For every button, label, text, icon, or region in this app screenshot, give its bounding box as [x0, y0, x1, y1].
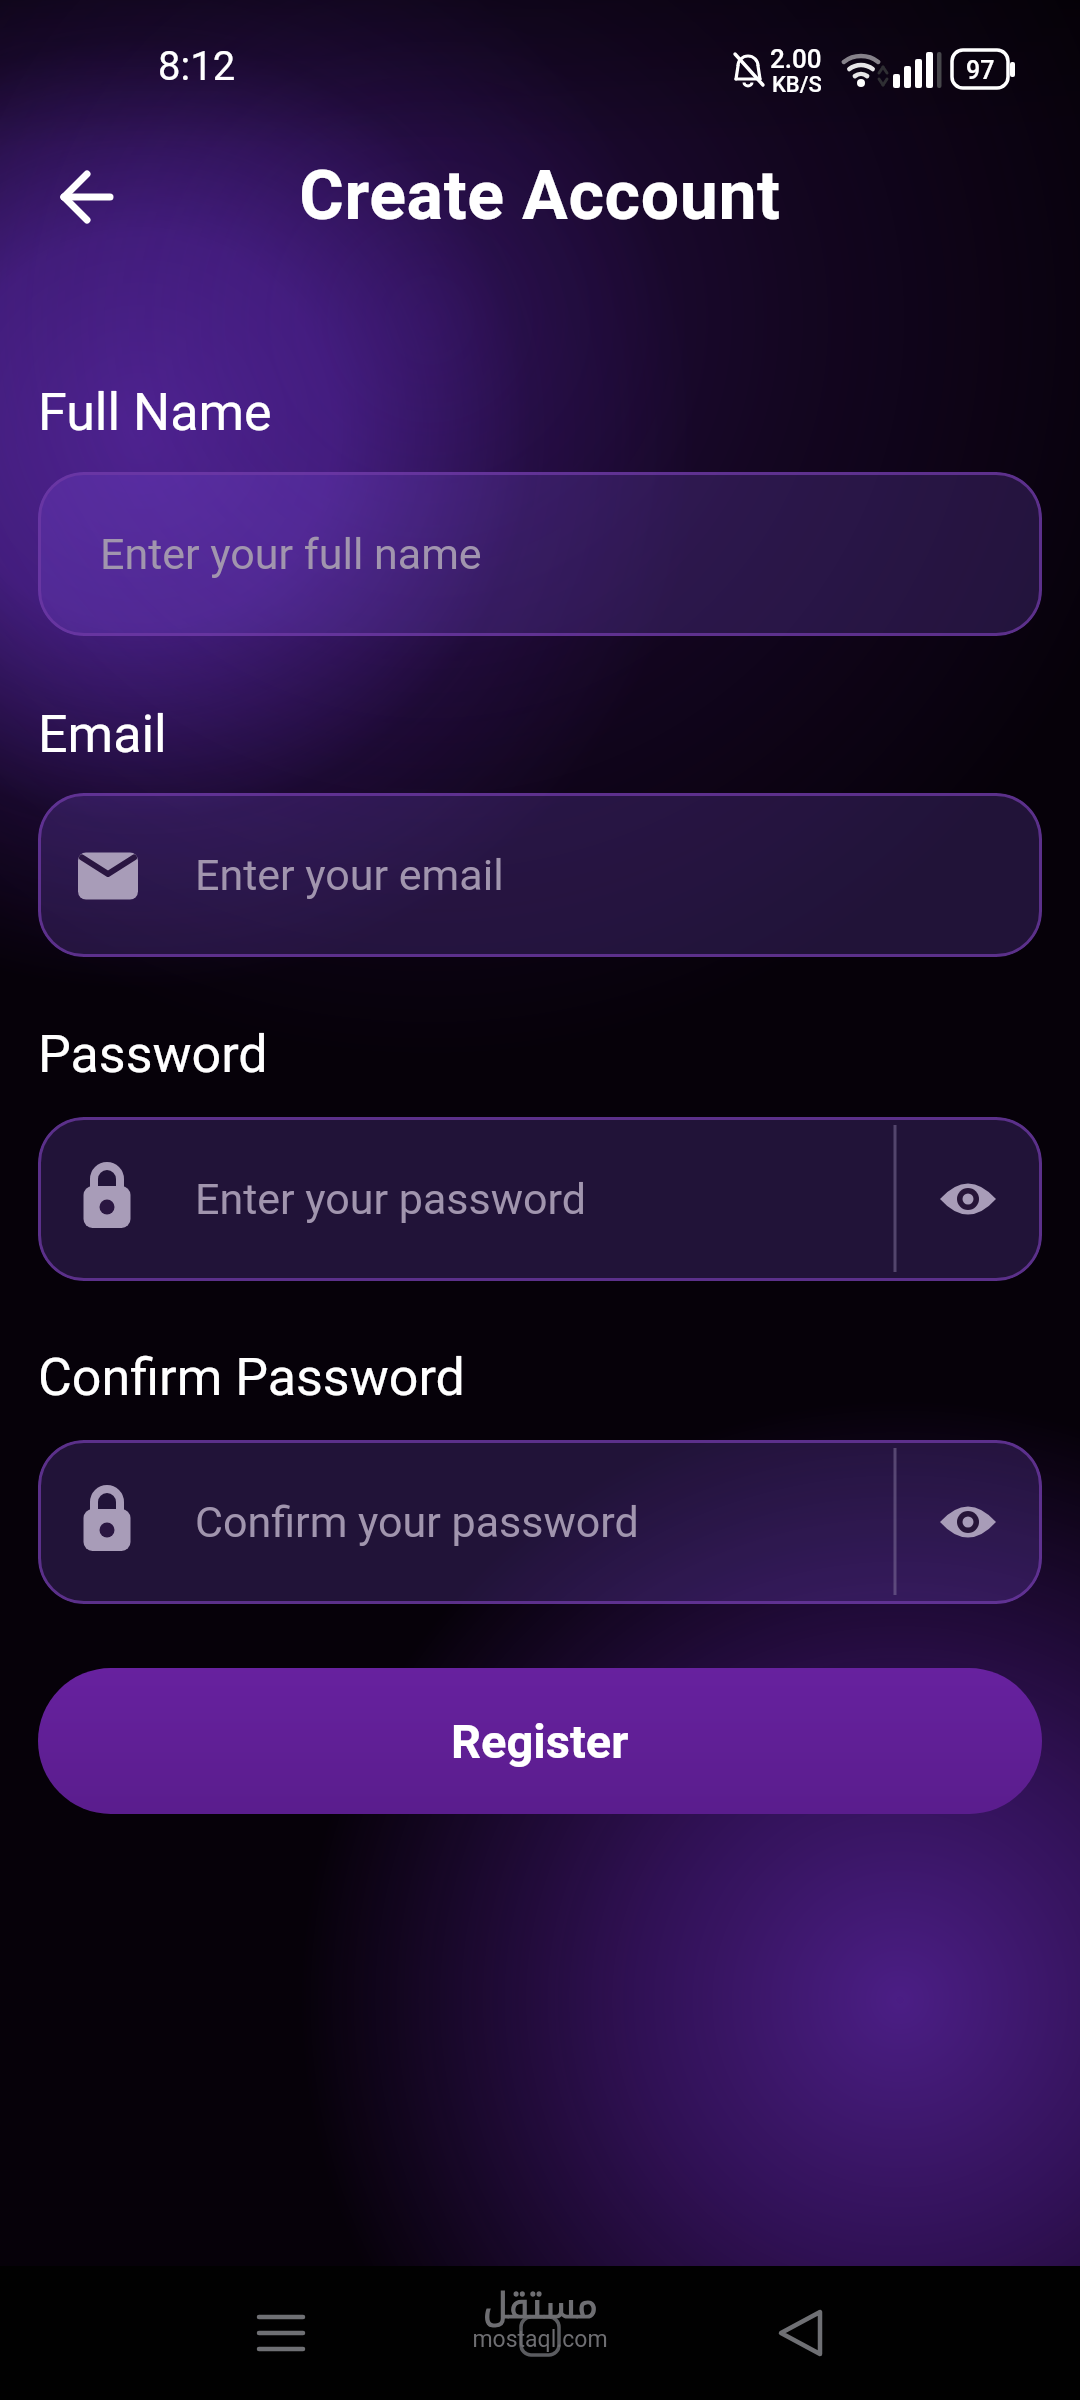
button[interactable]: Register [38, 1668, 1042, 1814]
staticText: Register [451, 1714, 629, 1769]
button[interactable] [38, 1440, 1042, 1604]
staticText: Password [38, 1024, 268, 1085]
button[interactable] [38, 1117, 1042, 1281]
staticText: Create Account [299, 156, 781, 236]
button[interactable] [38, 793, 1042, 957]
staticText: Full Name [38, 382, 272, 443]
staticText: mostaql.com [472, 2326, 608, 2353]
staticText: مستقل [483, 2272, 598, 2340]
staticText: Confirm your password [195, 1497, 639, 1547]
button[interactable] [52, 164, 120, 232]
staticText: KB/S [772, 72, 822, 98]
staticText: Enter your password [195, 1174, 586, 1224]
staticText: 8:12 [158, 43, 236, 90]
staticText: Confirm Password [38, 1347, 465, 1408]
staticText: Email [38, 704, 167, 765]
staticText: 97 [966, 56, 995, 85]
staticText: Enter your full name [100, 529, 482, 579]
button[interactable] [38, 472, 1042, 636]
staticText: 2.00 [770, 44, 822, 74]
button[interactable] [245, 2300, 315, 2370]
staticText: Enter your email [195, 850, 504, 900]
button[interactable] [770, 2300, 834, 2364]
